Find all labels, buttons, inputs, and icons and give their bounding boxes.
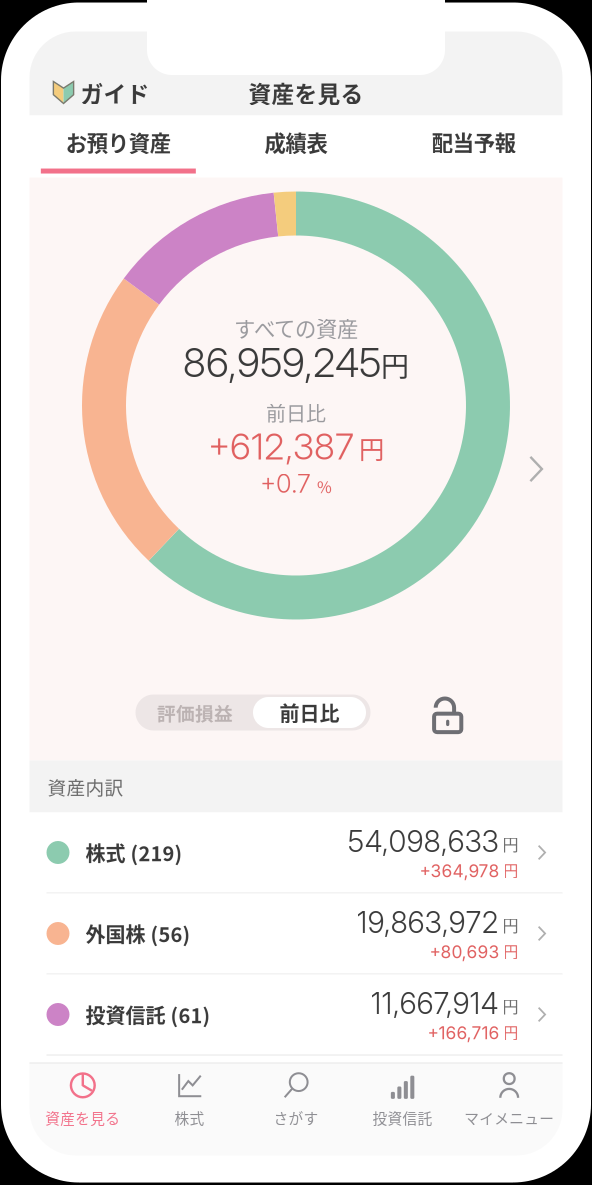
staticText: %: [317, 475, 332, 498]
staticText: 円: [503, 1021, 518, 1042]
staticText: 円: [381, 344, 409, 385]
staticText: 円: [502, 832, 518, 855]
staticText: 前日比: [266, 398, 326, 427]
staticText: +0.7: [260, 468, 311, 499]
button[interactable]: マイメニュー: [456, 1063, 562, 1127]
staticText: 円: [503, 940, 518, 961]
staticText: すべての資産: [234, 312, 358, 343]
staticText: マイメニュー: [464, 1107, 554, 1128]
staticText: +364,978: [419, 860, 499, 881]
button[interactable]: 投資信託 (61): [29, 974, 562, 1055]
button[interactable]: ガイド: [29, 70, 149, 114]
button[interactable]: 投資信託: [349, 1063, 456, 1127]
staticText: 資産を見る: [248, 76, 363, 109]
staticText: 円: [502, 913, 518, 936]
button[interactable]: 配当予報: [385, 115, 562, 177]
button[interactable]: 評価損益: [137, 694, 253, 730]
button[interactable]: 前日比: [253, 697, 366, 728]
button[interactable]: 資産を見る: [29, 1063, 136, 1127]
staticText: 資産内訳: [47, 773, 123, 800]
staticText: +80,693: [429, 941, 499, 962]
button[interactable]: 資産を隠す: [428, 692, 468, 732]
button[interactable]: 外国株 (56): [29, 893, 562, 974]
staticText: 円: [503, 859, 518, 880]
staticText: 配当予報: [432, 127, 516, 157]
button[interactable]: お預り資産: [29, 115, 207, 177]
staticText: 外国株 (56): [85, 919, 190, 948]
button[interactable]: 株式 (219): [29, 812, 562, 893]
button[interactable]: 株式: [136, 1063, 243, 1127]
staticText: お預り資産: [66, 127, 171, 157]
staticText: 株式: [174, 1107, 204, 1128]
button[interactable]: さがす: [243, 1063, 349, 1127]
staticText: 資産を見る: [45, 1107, 120, 1128]
staticText: 円: [502, 994, 518, 1017]
staticText: 11,667,914: [370, 986, 498, 1021]
staticText: 投資信託 (61): [85, 1000, 210, 1029]
staticText: +612,387: [208, 425, 354, 468]
staticText: 前日比: [279, 698, 339, 727]
staticText: 86,959,245: [183, 338, 381, 387]
staticText: 投資信託: [373, 1107, 433, 1128]
staticText: ガイド: [80, 76, 149, 109]
staticText: 評価損益: [157, 699, 233, 726]
staticText: 株式 (219): [85, 838, 182, 867]
staticText: 円: [359, 430, 384, 466]
staticText: 成績表: [264, 127, 327, 157]
staticText: さがす: [273, 1107, 318, 1128]
staticText: 54,098,633: [347, 824, 498, 859]
staticText: 19,863,972: [356, 905, 498, 940]
staticText: +166,716: [427, 1022, 499, 1043]
button[interactable]: 成績表: [207, 115, 385, 177]
